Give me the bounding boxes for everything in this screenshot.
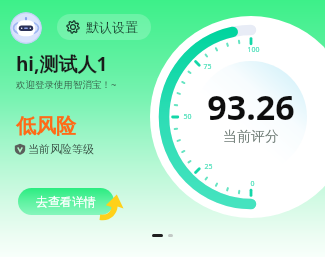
staticText: 默认设置: [86, 19, 138, 35]
other: Go to details: [99, 194, 124, 221]
staticText: hi,测试人1: [16, 51, 108, 77]
staticText: 当前风险等级: [28, 142, 94, 156]
staticText: 0: [250, 179, 255, 189]
staticText: 93.26: [207, 84, 295, 130]
staticText: 25: [204, 162, 213, 172]
staticText: 75: [203, 62, 212, 72]
button[interactable]: 去查看详情: [18, 188, 114, 215]
staticText: 50: [183, 112, 192, 122]
staticText: 低风险: [16, 114, 76, 139]
staticText: 100: [247, 45, 260, 55]
staticText: 去查看详情: [36, 194, 96, 209]
staticText: 当前评分: [223, 128, 279, 146]
button[interactable]: 默认设置: [57, 14, 151, 40]
staticText: 欢迎登录使用智消宝！~: [16, 78, 117, 91]
button[interactable]: Profile avatar: [10, 12, 42, 44]
